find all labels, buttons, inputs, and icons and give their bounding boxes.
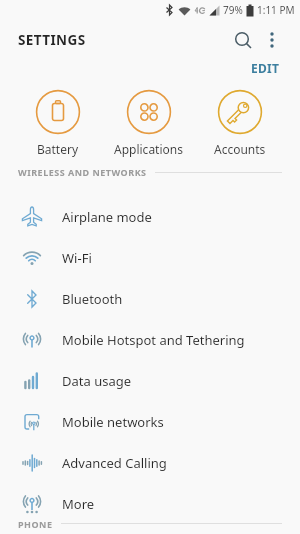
staticText: Wi-Fi — [62, 249, 92, 267]
button[interactable]: Advanced Calling — [0, 442, 300, 483]
button[interactable]: Mobile Hotspot and Tethering — [0, 319, 300, 360]
staticText: Mobile Hotspot and Tethering — [62, 331, 245, 349]
staticText: Accounts — [214, 141, 266, 157]
staticText: Airplane mode — [62, 208, 152, 226]
staticText: Data usage — [62, 372, 132, 390]
staticText: Bluetooth — [62, 290, 123, 308]
button[interactable]: Accounts — [194, 90, 285, 157]
staticText: More — [62, 495, 95, 513]
button[interactable]: Applications — [103, 90, 194, 157]
staticText: Advanced Calling — [62, 454, 167, 472]
staticText: WIRELESS AND NETWORKS — [18, 166, 147, 178]
button[interactable] — [260, 28, 284, 52]
staticText: Battery — [37, 141, 79, 157]
staticText: EDIT — [251, 60, 280, 76]
button[interactable]: Mobile networks — [0, 401, 300, 442]
staticText: PHONE — [18, 518, 53, 528]
staticText: 79% — [223, 3, 243, 17]
staticText: Mobile networks — [62, 413, 164, 431]
staticText: Applications — [114, 141, 183, 157]
button[interactable]: Airplane mode — [0, 196, 300, 237]
button[interactable]: Wi-Fi — [0, 237, 300, 278]
button[interactable]: More — [0, 483, 300, 524]
staticText: SETTINGS — [18, 31, 86, 49]
staticText: 1:11 PM — [257, 3, 295, 17]
button[interactable]: Data usage — [0, 360, 300, 401]
button[interactable]: EDIT — [251, 60, 280, 76]
button[interactable]: Bluetooth — [0, 278, 300, 319]
button[interactable]: Battery — [13, 90, 103, 157]
button[interactable] — [229, 26, 257, 54]
